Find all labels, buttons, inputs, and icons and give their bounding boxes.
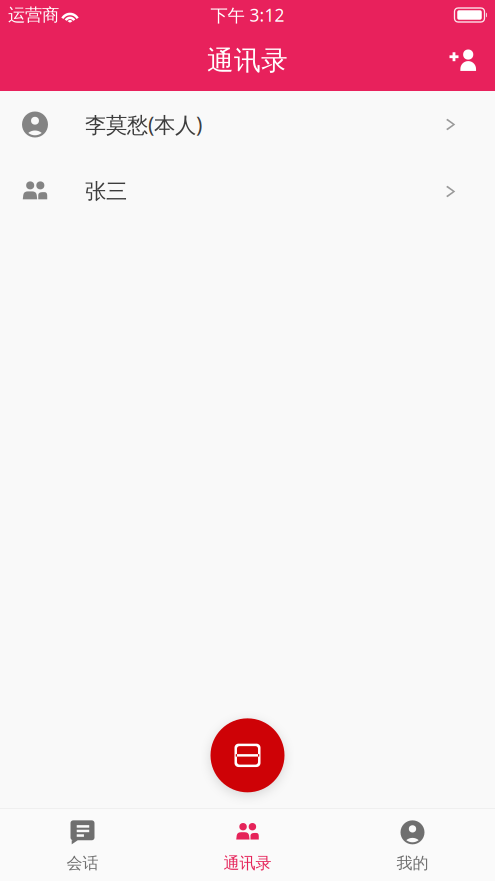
button[interactable]: 通讯录 xyxy=(165,808,330,881)
staticText: 运营商 xyxy=(8,4,59,26)
staticText: 下午 3:12 xyxy=(210,3,284,26)
staticText: 通讯录 xyxy=(207,44,288,77)
button[interactable]: Add contact xyxy=(442,38,486,82)
button[interactable]: 我的 xyxy=(330,808,495,881)
button[interactable]: 李莫愁(本人) xyxy=(0,91,495,158)
staticText: 张三 xyxy=(85,178,127,205)
staticText: 李莫愁(本人) xyxy=(85,110,202,139)
staticText: 我的 xyxy=(396,853,428,873)
button[interactable]: Scan card xyxy=(203,711,291,799)
staticText: 会话 xyxy=(66,853,98,873)
staticText: 通讯录 xyxy=(223,853,271,873)
button[interactable]: 会话 xyxy=(0,808,165,881)
button[interactable]: 张三 xyxy=(0,158,495,225)
